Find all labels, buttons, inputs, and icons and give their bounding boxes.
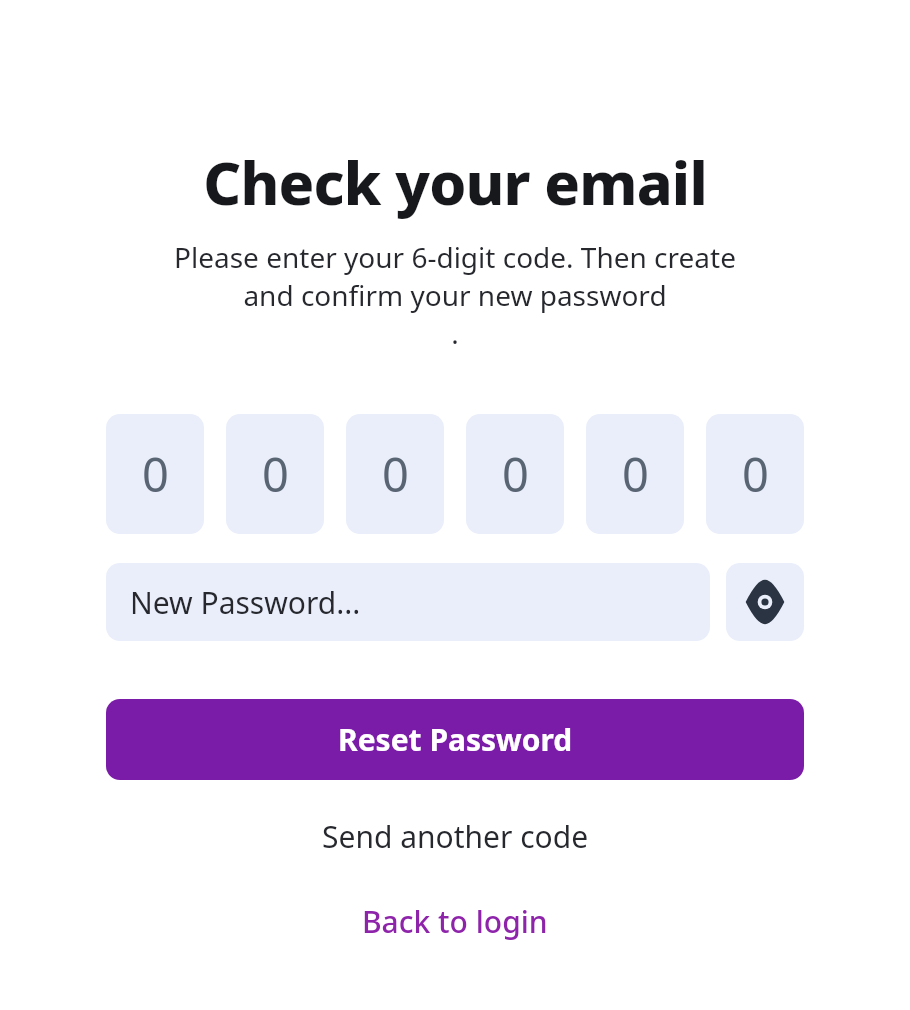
staticText: 0 (742, 442, 769, 506)
button[interactable]: Send another code (308, 808, 603, 865)
staticText: New Password... (130, 582, 361, 623)
staticText: Back to login (362, 901, 548, 942)
button[interactable]: Code digit 5 (586, 414, 684, 534)
button[interactable]: Code digit 1 (106, 414, 204, 534)
button[interactable]: Back to login (348, 893, 562, 950)
staticText: 0 (502, 442, 529, 506)
staticText: 0 (262, 442, 289, 506)
staticText: 0 (622, 442, 649, 506)
staticText: 0 (142, 442, 169, 506)
button[interactable]: Code digit 6 (706, 414, 804, 534)
button[interactable]: Show password (726, 563, 804, 641)
staticText: Send another code (322, 816, 589, 857)
button[interactable]: Code digit 2 (226, 414, 324, 534)
button[interactable]: Code digit 3 (346, 414, 444, 534)
button[interactable]: New Password... (106, 563, 710, 641)
button[interactable]: Reset Password (106, 699, 804, 780)
staticText: Please enter your 6-digit code. Then cre… (145, 238, 765, 352)
staticText: Check your email (203, 142, 707, 222)
button[interactable]: Code digit 4 (466, 414, 564, 534)
staticText: 0 (382, 442, 409, 506)
staticText: Reset Password (338, 719, 573, 760)
